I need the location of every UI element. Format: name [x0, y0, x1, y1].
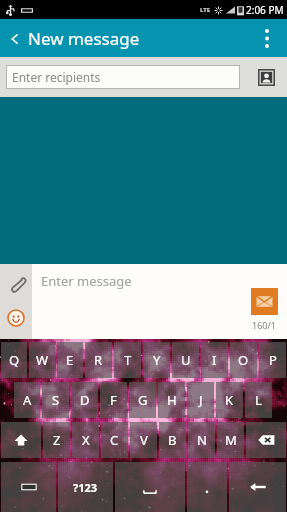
staticText: New message — [28, 27, 140, 50]
button[interactable]: O — [230, 342, 257, 378]
staticText: C — [110, 431, 119, 449]
staticText: H — [167, 391, 177, 409]
button[interactable]: H — [158, 382, 185, 418]
button[interactable]: Keyboard settings — [1, 462, 56, 512]
button[interactable]: B — [159, 422, 186, 458]
button[interactable]: U — [172, 342, 199, 378]
staticText: 2:06 PM — [246, 3, 284, 17]
staticText: E — [66, 351, 74, 369]
staticText: M — [225, 431, 237, 449]
staticText: O — [238, 351, 249, 369]
button[interactable]: S — [42, 382, 69, 418]
staticText: 160/1 — [252, 319, 276, 331]
staticText: S — [52, 391, 60, 409]
button[interactable]: Z — [43, 422, 70, 458]
staticText: Enter recipients — [12, 69, 101, 85]
staticText: L — [255, 391, 262, 409]
staticText: D — [80, 391, 90, 409]
button[interactable]: More options — [247, 28, 287, 48]
staticText: V — [140, 431, 148, 449]
button[interactable]: Backspace — [246, 422, 286, 458]
button[interactable]: V — [130, 422, 157, 458]
button[interactable]: F — [100, 382, 127, 418]
button[interactable]: G — [129, 382, 156, 418]
button[interactable]: K — [216, 382, 243, 418]
button[interactable]: Shift — [1, 422, 41, 458]
staticText: Enter message — [41, 272, 132, 290]
button[interactable]: Enter message — [32, 264, 241, 339]
staticText: W — [36, 351, 49, 369]
button[interactable]: P — [259, 342, 286, 378]
button[interactable]: Enter recipients — [6, 65, 240, 89]
button[interactable]: ?123 — [58, 462, 113, 512]
button[interactable]: A — [14, 382, 40, 418]
button[interactable]: W — [29, 342, 55, 378]
button[interactable]: T — [114, 342, 141, 378]
staticText: J — [199, 391, 203, 409]
button[interactable]: R — [85, 342, 112, 378]
button[interactable]: Space — [115, 462, 185, 512]
button[interactable]: Emoji — [0, 307, 32, 329]
button[interactable]: L — [245, 382, 272, 418]
button[interactable]: E — [57, 342, 83, 378]
staticText: I — [212, 351, 217, 369]
staticText: G — [138, 391, 148, 409]
staticText: X — [82, 431, 90, 449]
button[interactable]: New message — [0, 27, 148, 50]
staticText: U — [181, 351, 191, 369]
staticText: Y — [153, 351, 161, 369]
button[interactable]: X — [72, 422, 99, 458]
staticText: R — [94, 351, 103, 369]
staticText: K — [225, 391, 234, 409]
staticText: Z — [53, 431, 61, 449]
staticText: B — [168, 431, 177, 449]
button[interactable]: J — [187, 382, 214, 418]
button[interactable]: D — [71, 382, 98, 418]
staticText: A — [23, 391, 32, 409]
button[interactable]: M — [217, 422, 244, 458]
button[interactable]: C — [101, 422, 128, 458]
button[interactable]: I — [201, 342, 228, 378]
staticText: N — [197, 431, 207, 449]
button[interactable]: Attach — [0, 273, 32, 295]
button[interactable]: N — [188, 422, 215, 458]
button[interactable]: Send — [251, 288, 278, 315]
button[interactable]: Period — [187, 462, 227, 512]
button[interactable]: Q — [1, 342, 27, 378]
staticText: LTE — [200, 6, 211, 14]
staticText: T — [124, 351, 132, 369]
staticText: F — [110, 391, 117, 409]
staticText: Q — [9, 351, 20, 369]
button[interactable]: Y — [143, 342, 170, 378]
button[interactable]: Add contacts — [254, 65, 278, 89]
button[interactable]: Enter — [229, 462, 286, 512]
staticText: P — [269, 351, 277, 369]
staticText: ?123 — [73, 480, 98, 495]
